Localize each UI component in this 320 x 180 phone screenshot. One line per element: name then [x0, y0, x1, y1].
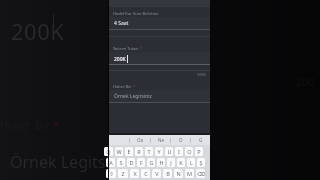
button[interactable]: G [147, 158, 155, 167]
staticText: G [199, 137, 203, 143]
button[interactable]: Shift [106, 169, 116, 178]
staticText: Ş [199, 159, 203, 166]
staticText: Yatırım Tutarı [113, 46, 139, 51]
button[interactable]: L [187, 158, 195, 167]
staticText: 200K [11, 16, 65, 46]
staticText: 4 Saat [114, 20, 129, 27]
staticText: Q [106, 148, 111, 155]
staticText: Oo [137, 137, 144, 143]
button[interactable]: I [175, 147, 183, 156]
staticText: Hedef Kur Süre Belirtme [113, 11, 159, 16]
button[interactable]: C [141, 169, 150, 178]
staticText: O [187, 148, 192, 155]
button[interactable]: Z [118, 169, 128, 178]
button[interactable]: O [185, 147, 193, 156]
staticText: Örnek Legitsiniz [114, 93, 152, 100]
staticText: G [149, 159, 154, 166]
staticText: E [127, 148, 131, 155]
button[interactable]: M [185, 169, 194, 178]
button[interactable]: V [152, 169, 161, 178]
staticText: F [140, 159, 143, 166]
button[interactable]: G [191, 135, 210, 145]
staticText: L [190, 159, 193, 166]
staticText: Y [157, 148, 161, 155]
staticText: 200K [114, 56, 126, 63]
button[interactable]: H [157, 158, 165, 167]
staticText: M [187, 170, 192, 177]
staticText: H [159, 159, 164, 166]
staticText: V [155, 170, 159, 177]
button[interactable]: B [163, 169, 172, 178]
staticText: * [133, 84, 136, 89]
staticText: P [197, 148, 201, 155]
button[interactable]: T [145, 147, 153, 156]
staticText: K [179, 159, 183, 166]
button[interactable]: Oo [130, 135, 150, 145]
button[interactable]: E [125, 147, 133, 156]
staticText: D [129, 159, 134, 166]
button[interactable]: X [130, 169, 139, 178]
button[interactable]: 4 Saat [109, 17, 210, 30]
button[interactable]: Backspace [196, 169, 205, 178]
button[interactable]: Q [104, 147, 113, 156]
staticText: T [147, 148, 151, 155]
button[interactable]: Örnek Legitsiniz [109, 90, 210, 103]
staticText: U [167, 148, 172, 155]
button[interactable]: N [174, 169, 183, 178]
staticText: C [144, 170, 148, 177]
staticText: * [53, 117, 60, 132]
button[interactable]: K [177, 158, 185, 167]
staticText: J [170, 159, 172, 166]
button[interactable]: U [165, 147, 173, 156]
staticText: Z [121, 170, 125, 177]
staticText: A [109, 159, 113, 166]
button[interactable]: 200K [109, 52, 210, 65]
button[interactable]: J [167, 158, 175, 167]
staticText: ⇧ [109, 171, 114, 177]
button[interactable]: Ş [197, 158, 205, 167]
staticText: 200 [296, 74, 315, 89]
button[interactable]: Ne [151, 135, 170, 145]
staticText: N [176, 170, 181, 177]
staticText: Örnek Legitsiniz [10, 151, 132, 173]
button[interactable]: D [127, 158, 135, 167]
button[interactable]: Y [155, 147, 163, 156]
staticText: X [133, 170, 137, 177]
button[interactable]: P [195, 147, 203, 156]
button[interactable]: O [171, 135, 190, 145]
button[interactable]: F [137, 158, 145, 167]
button[interactable]: A [106, 158, 115, 167]
staticText: Ne [158, 137, 164, 143]
staticText: O [179, 137, 183, 143]
button[interactable]: R [135, 147, 143, 156]
staticText: B [166, 170, 170, 177]
staticText: R [137, 148, 141, 155]
staticText: Haber Biz [113, 84, 132, 89]
button[interactable]: S [117, 158, 125, 167]
staticText: I [178, 148, 180, 155]
button[interactable]: W [115, 147, 123, 156]
staticText: W [116, 148, 122, 155]
staticText: * [140, 46, 143, 51]
staticText: S [119, 159, 123, 166]
staticText: ⌫ [197, 171, 205, 177]
